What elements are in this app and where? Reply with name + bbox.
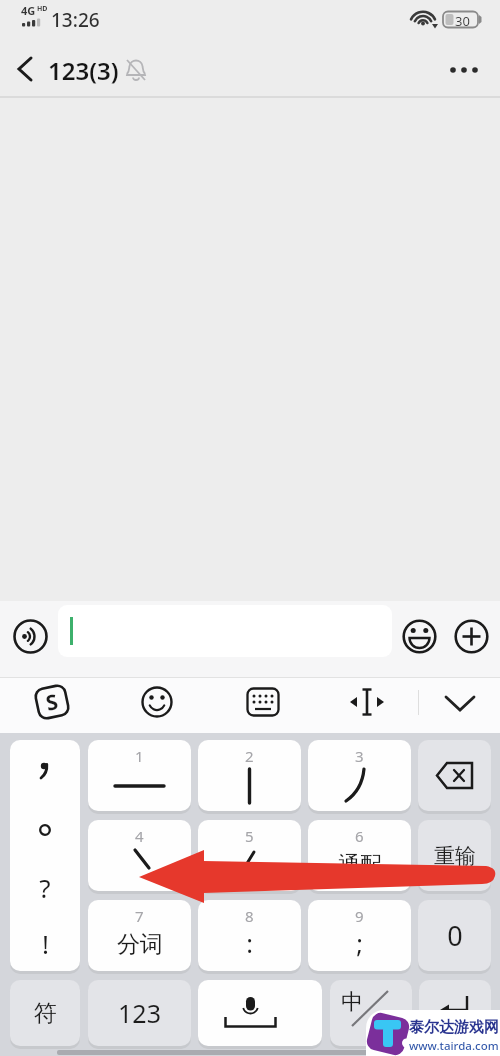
button[interactable]: ? — [10, 740, 80, 971]
button[interactable]: S — [34, 684, 70, 720]
staticText: 7 — [135, 906, 144, 926]
button[interactable] — [442, 54, 486, 86]
button[interactable]: 123 — [88, 980, 191, 1046]
button[interactable] — [13, 619, 48, 654]
staticText: 重输 — [434, 843, 476, 869]
staticText: 9 — [355, 906, 364, 926]
button[interactable] — [418, 740, 491, 811]
button[interactable] — [454, 619, 489, 654]
staticText: 2 — [245, 746, 254, 766]
staticText: 通配 — [338, 851, 382, 879]
staticText: HD — [37, 4, 48, 14]
staticText: 1 — [135, 746, 144, 766]
button[interactable]: 重输 — [418, 820, 491, 891]
staticText: 英 — [376, 1012, 391, 1031]
button[interactable]: 7 — [88, 900, 191, 971]
button[interactable]: 2 — [198, 740, 301, 811]
staticText: 中 — [341, 988, 363, 1016]
staticText: 符 — [34, 999, 57, 1028]
staticText: ! — [42, 926, 49, 961]
staticText: 4 — [135, 826, 144, 846]
button[interactable]: 6 — [308, 820, 411, 891]
staticText: 30 — [455, 12, 470, 30]
staticText: : — [246, 926, 253, 960]
staticText: 6 — [355, 826, 364, 846]
staticText: 123(3) — [48, 54, 119, 87]
staticText: 8 — [245, 906, 254, 926]
staticText: 0 — [447, 917, 463, 954]
button[interactable] — [402, 619, 437, 654]
staticText: 泰尔达游戏网 — [409, 1018, 499, 1037]
button[interactable] — [198, 980, 322, 1046]
button[interactable]: 3 — [308, 740, 411, 811]
staticText: 13:26 — [51, 7, 100, 33]
staticText: ; — [356, 926, 363, 960]
button[interactable] — [348, 686, 386, 718]
button[interactable] — [8, 52, 42, 86]
button[interactable]: 1 — [88, 740, 191, 811]
staticText: S — [43, 687, 61, 718]
staticText: 5 — [245, 826, 254, 846]
button[interactable]: 9 — [308, 900, 411, 971]
button[interactable]: 中 — [330, 980, 412, 1046]
button[interactable]: 0 — [418, 900, 491, 971]
button[interactable] — [58, 605, 392, 657]
staticText: 4G — [21, 3, 36, 18]
button[interactable]: 符 — [10, 980, 80, 1046]
button[interactable]: 5 — [198, 820, 301, 891]
button[interactable] — [140, 685, 174, 719]
staticText: www.tairda.com — [409, 1038, 499, 1054]
button[interactable]: 4 — [88, 820, 191, 891]
button[interactable] — [246, 687, 280, 717]
staticText: 3 — [355, 746, 364, 766]
button[interactable] — [438, 688, 482, 718]
staticText: 分词 — [117, 930, 163, 959]
staticText: ? — [39, 870, 51, 905]
staticText: 123 — [118, 996, 161, 1030]
button[interactable] — [419, 980, 491, 1046]
button[interactable]: 8 — [198, 900, 301, 971]
